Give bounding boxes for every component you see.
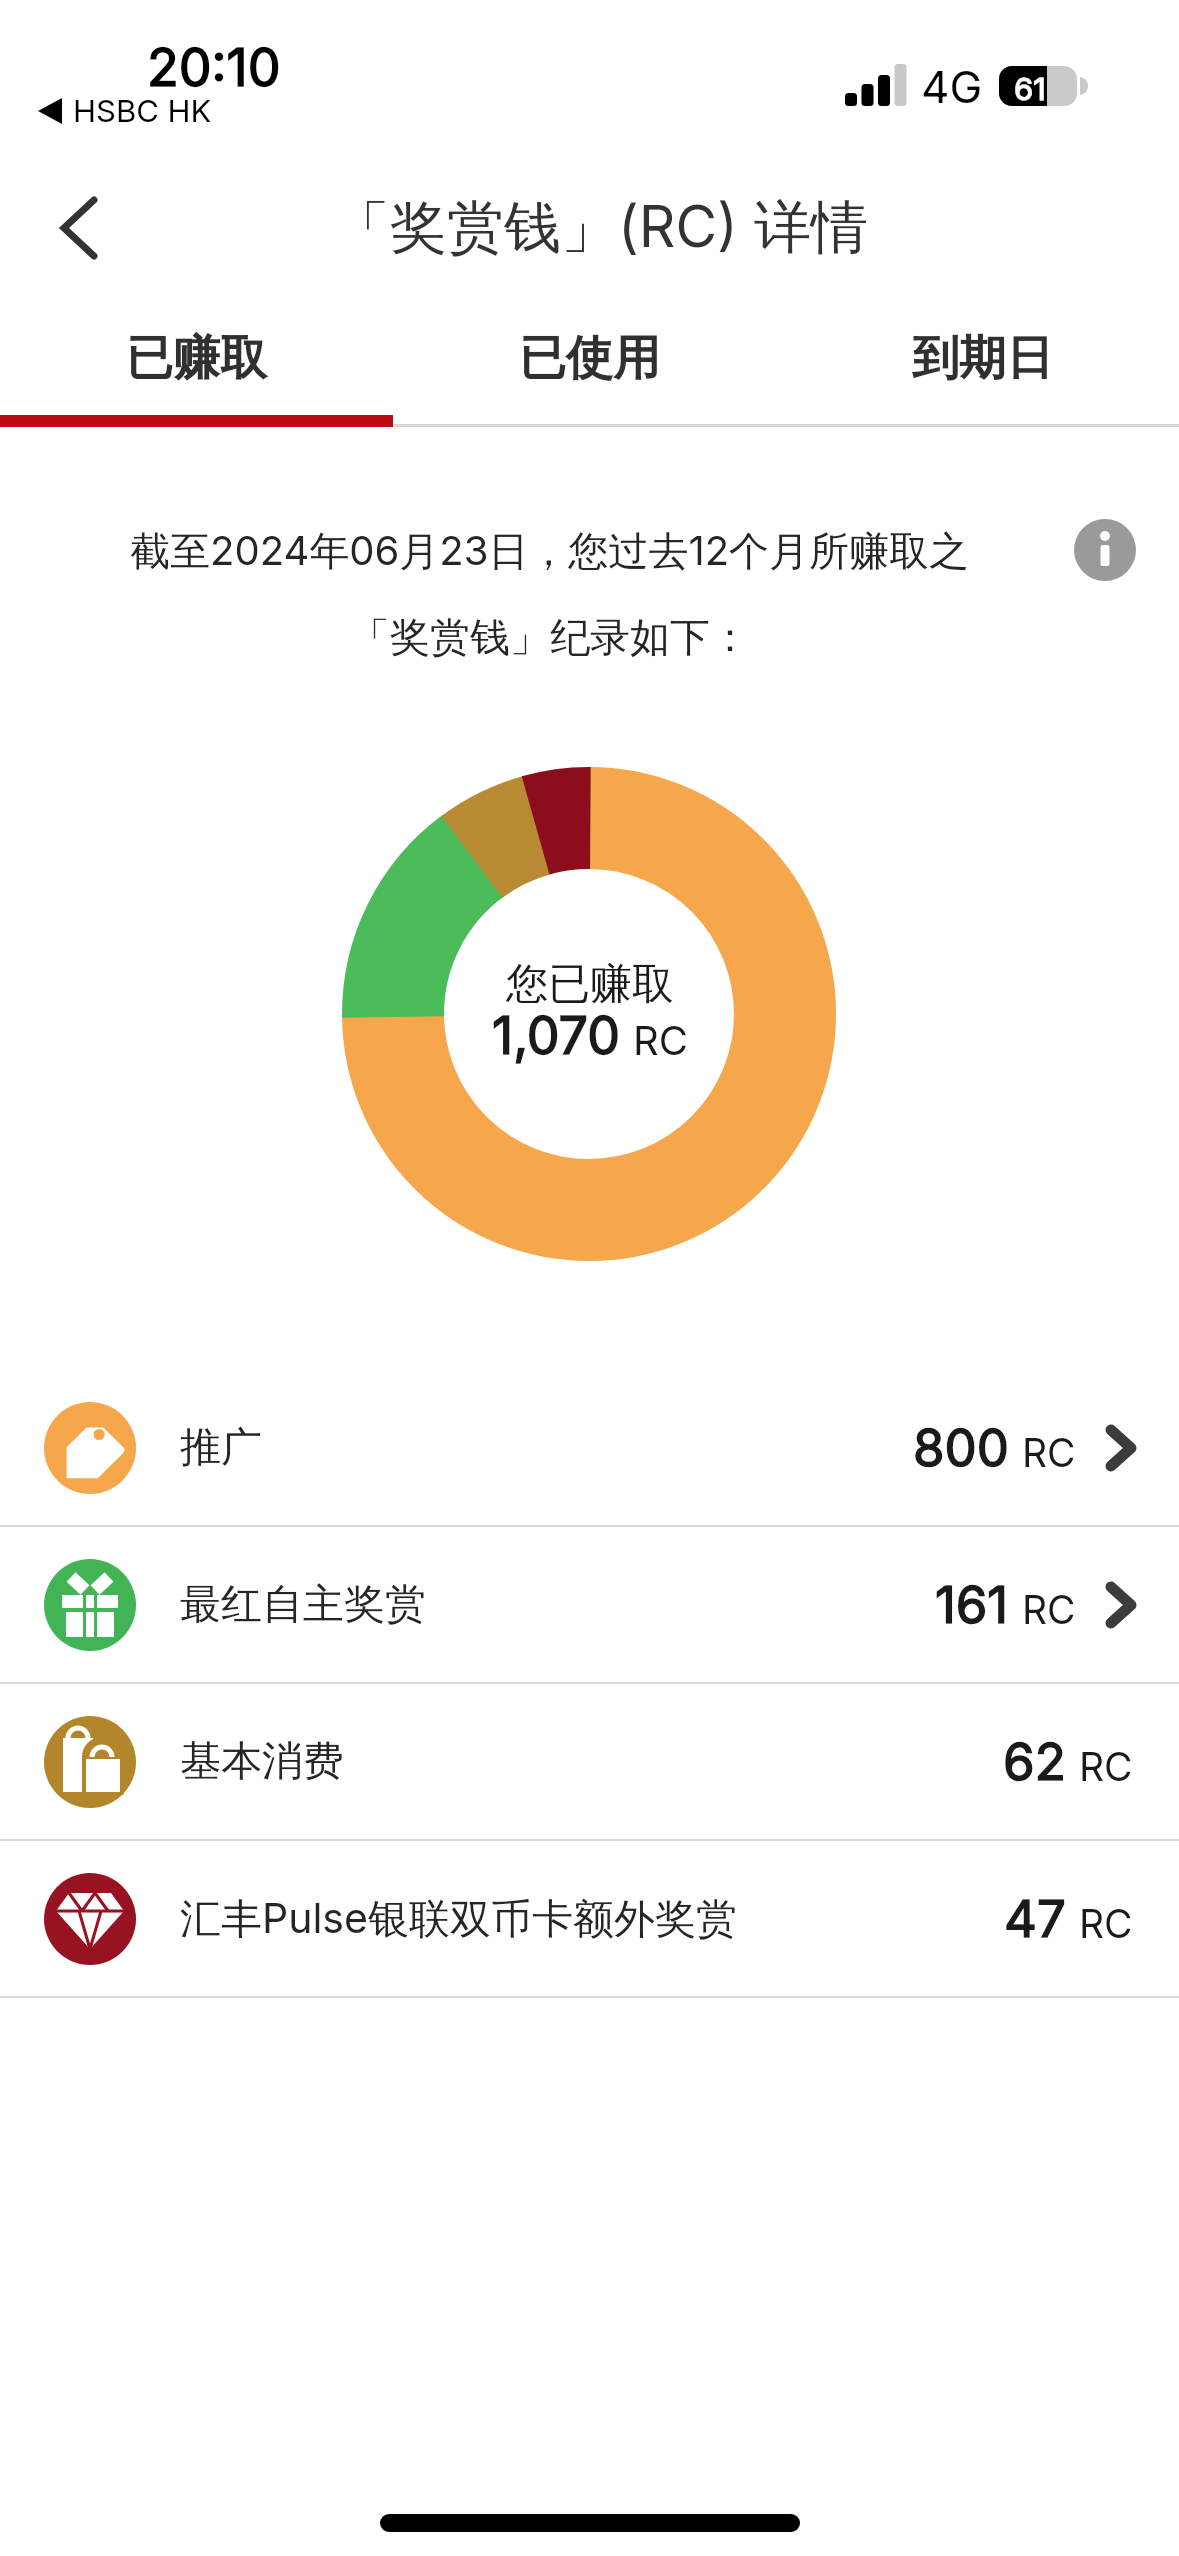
staticText: 基本消费 [180,1736,344,1788]
staticText: 161 [935,1574,1009,1636]
staticText: RC [1079,1900,1133,1947]
staticText: 已赚取 [126,329,267,388]
button[interactable] [1074,519,1136,581]
staticText: 最红自主奖赏 [180,1579,426,1631]
staticText: RC [1022,1586,1076,1633]
staticText: 1,070 [492,1004,621,1066]
staticText: 推广 [180,1422,262,1474]
staticText: 「奖赏钱」纪录如下： [350,612,750,662]
staticText: HSBC HK [73,92,212,130]
staticText: 已使用 [519,329,660,388]
staticText: RC [1022,1429,1076,1476]
button[interactable]: 到期日 [786,318,1179,398]
button[interactable] [30,180,125,275]
button[interactable]: 基本消费 [0,1684,1179,1839]
staticText: 截至2024年06月23日，您过去12个月所赚取之 [130,526,970,577]
staticText: 20:10 [147,36,281,99]
staticText: RC [633,1016,688,1064]
staticText: 您已赚取 [506,958,674,1010]
button[interactable]: 推广 [0,1370,1179,1525]
staticText: 汇丰Pulse银联双币卡额外奖赏 [180,1893,737,1945]
button[interactable]: 已赚取 [0,318,393,398]
button[interactable]: 最红自主奖赏 [0,1527,1179,1682]
staticText: 到期日 [912,329,1053,388]
staticText: 61 [1014,70,1046,108]
staticText: 800 [913,1417,1009,1479]
staticText: RC [1079,1743,1133,1790]
staticText: 62 [1003,1731,1066,1793]
button[interactable]: 汇丰Pulse银联双币卡额外奖赏 [0,1841,1179,1996]
staticText: 47 [1004,1888,1066,1950]
staticText: 4G [921,60,983,113]
staticText: 「奖赏钱」(RC) 详情 [333,192,868,264]
button[interactable]: 已使用 [393,318,786,398]
